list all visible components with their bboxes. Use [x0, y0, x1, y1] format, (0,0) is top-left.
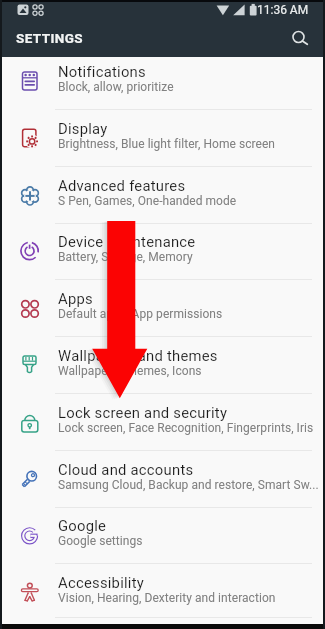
staticText: Lock screen and security	[58, 404, 228, 421]
staticText: Samsung Cloud, Backup and restore, Smart…	[58, 478, 319, 492]
button[interactable]: Lock screen and security	[0, 398, 325, 455]
staticText: Notifications	[58, 63, 146, 80]
button[interactable]: Google	[0, 511, 325, 568]
staticText: 11:36 AM	[257, 3, 309, 17]
staticText: Cloud and accounts	[58, 461, 194, 478]
staticText: Brightness, Blue light filter, Home scre…	[58, 137, 276, 151]
staticText: Device maintenance	[58, 233, 196, 250]
button[interactable]: Display	[0, 114, 325, 171]
staticText: Battery, Storage, Memory	[58, 250, 193, 264]
staticText: Vision, Hearing, Dexterity and interacti…	[58, 591, 276, 605]
staticText: Wallpapers and themes	[58, 347, 218, 364]
button[interactable]	[288, 27, 309, 48]
button[interactable]: Advanced features	[0, 171, 325, 228]
staticText: Accessibility	[58, 574, 145, 591]
button[interactable]: Cloud and accounts	[0, 455, 325, 512]
button[interactable]: Notifications	[0, 57, 325, 114]
button[interactable]: Wallpapers and themes	[0, 341, 325, 398]
staticText: Display	[58, 120, 108, 137]
staticText: Wallpapers, Themes, Icons	[58, 364, 202, 378]
staticText: Advanced features	[58, 177, 186, 194]
staticText: S Pen, Games, One-handed mode	[58, 194, 237, 208]
staticText: Default apps, App permissions	[58, 307, 223, 321]
button[interactable]: Device maintenance	[0, 227, 325, 284]
staticText: Google	[58, 517, 107, 534]
staticText: Google settings	[58, 534, 143, 548]
staticText: Block, allow, prioritize	[58, 80, 174, 94]
staticText: Lock screen, Face Recognition, Fingerpri…	[58, 421, 314, 435]
button[interactable]: Accessibility	[0, 568, 325, 625]
staticText: Apps	[58, 290, 93, 307]
staticText: SETTINGS	[16, 30, 84, 46]
button[interactable]: Apps	[0, 284, 325, 341]
